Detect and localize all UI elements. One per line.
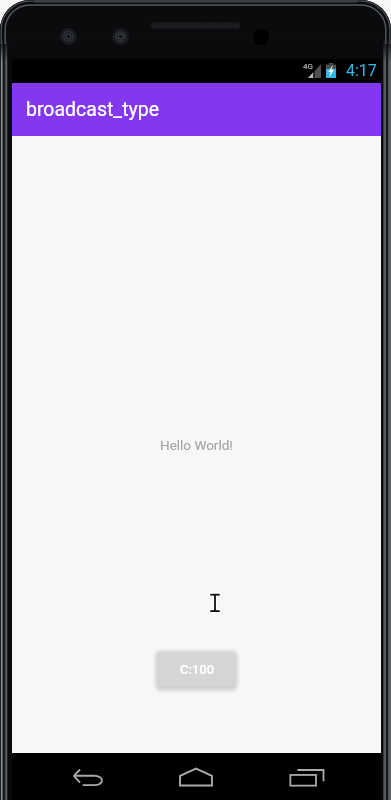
- button[interactable]: Recent apps: [267, 756, 347, 799]
- button[interactable]: Back: [49, 756, 129, 799]
- button[interactable]: Home: [156, 755, 236, 798]
- staticText: broadcast_type: [26, 98, 160, 121]
- button[interactable]: C:100: [159, 653, 234, 686]
- staticText: 4:17: [346, 61, 377, 80]
- staticText: 4G: [303, 62, 313, 71]
- staticText: C:100: [180, 662, 215, 677]
- staticText: Hello World!: [160, 437, 233, 453]
